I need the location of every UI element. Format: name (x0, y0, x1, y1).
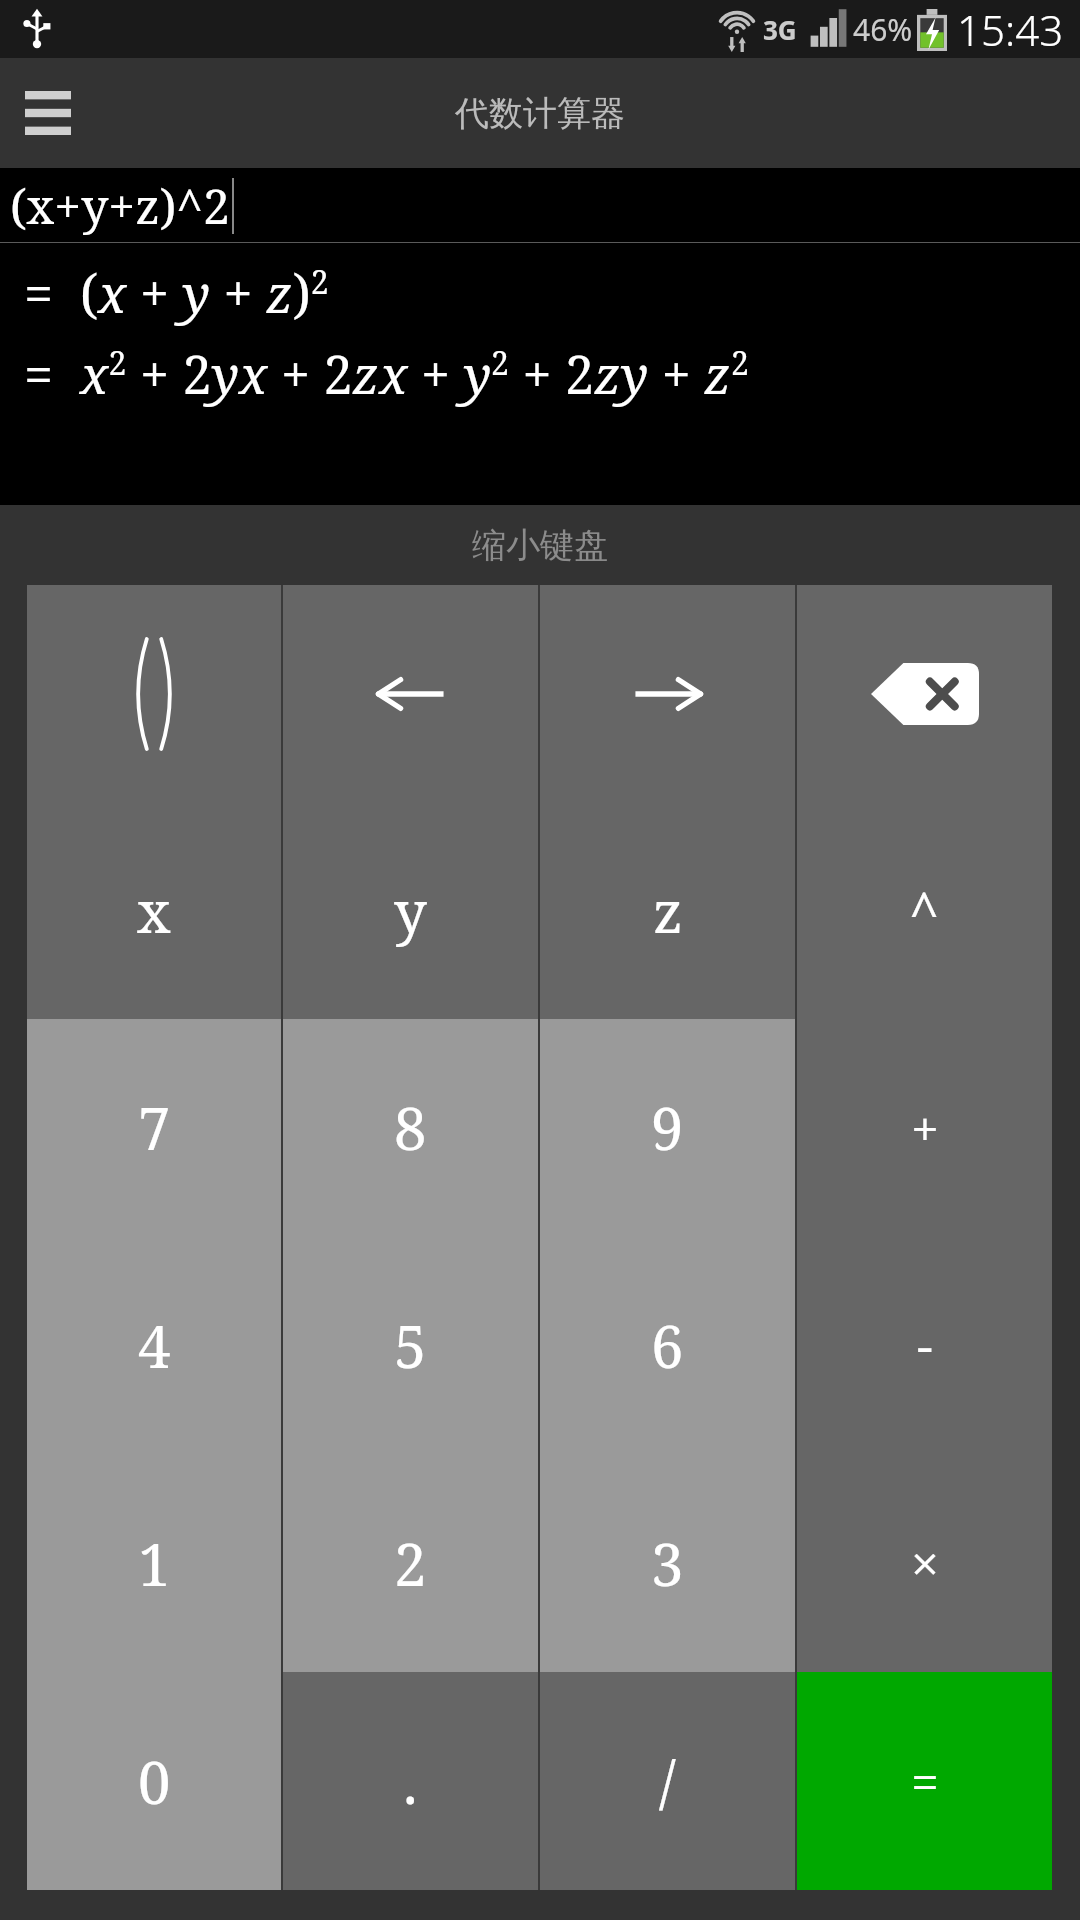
staticText: x (137, 871, 171, 950)
button[interactable]: z (540, 802, 795, 1019)
button[interactable]: (x+y+z)^2 (0, 168, 1080, 243)
button[interactable]: x (27, 802, 281, 1019)
staticText: 8 (394, 1088, 427, 1167)
staticText: / (659, 1742, 676, 1821)
staticText: 4 (138, 1306, 171, 1385)
button[interactable]: - (797, 1236, 1052, 1454)
button[interactable]: = (797, 1672, 1052, 1890)
button[interactable]: 9 (540, 1019, 795, 1236)
button[interactable]: . (283, 1672, 538, 1890)
staticText: . (403, 1742, 418, 1821)
button[interactable]: 1 (27, 1454, 281, 1672)
button[interactable]: 3 (540, 1454, 795, 1672)
button[interactable]: Menu (8, 73, 88, 153)
staticText: 0 (138, 1742, 171, 1821)
button[interactable]: Move cursor right (540, 585, 795, 802)
button[interactable]: Parentheses (27, 585, 281, 802)
staticText: 9 (651, 1088, 684, 1167)
staticText: 2 (394, 1524, 427, 1603)
button[interactable]: 6 (540, 1236, 795, 1454)
button[interactable]: Move cursor left (283, 585, 538, 802)
staticText: 1 (138, 1524, 171, 1603)
staticText: 缩小键盘 (472, 524, 608, 567)
button[interactable]: 4 (27, 1236, 281, 1454)
button[interactable]: 8 (283, 1019, 538, 1236)
button[interactable]: 7 (27, 1019, 281, 1236)
staticText: - (917, 1311, 933, 1379)
staticText: 3G (763, 12, 797, 47)
staticText: = x2 + 2yx + 2zx + y2 + 2zy + z2 (24, 338, 749, 409)
button[interactable]: Delete (797, 585, 1052, 802)
staticText: 3 (651, 1524, 684, 1603)
button[interactable]: × (797, 1454, 1052, 1672)
staticText: (x+y+z)^2 (10, 173, 230, 238)
button[interactable]: 2 (283, 1454, 538, 1672)
staticText: 5 (394, 1306, 427, 1385)
staticText: + (911, 1094, 939, 1162)
button[interactable]: ^ (797, 802, 1052, 1019)
staticText: = (x + y + z)2 (24, 257, 329, 328)
staticText: 15:43 (957, 1, 1064, 58)
button[interactable]: 缩小键盘 (0, 505, 1080, 585)
button[interactable]: + (797, 1019, 1052, 1236)
staticText: 7 (138, 1088, 171, 1167)
button[interactable]: 0 (27, 1672, 281, 1890)
staticText: ^ (909, 874, 940, 948)
staticText: 代数计算器 (455, 92, 625, 135)
staticText: z (653, 871, 683, 950)
staticText: 46% (853, 9, 913, 50)
button[interactable]: 5 (283, 1236, 538, 1454)
button[interactable]: / (540, 1672, 795, 1890)
staticText: y (394, 871, 427, 950)
staticText: = (911, 1747, 939, 1815)
staticText: × (911, 1529, 939, 1597)
button[interactable]: y (283, 802, 538, 1019)
staticText: 6 (651, 1306, 684, 1385)
